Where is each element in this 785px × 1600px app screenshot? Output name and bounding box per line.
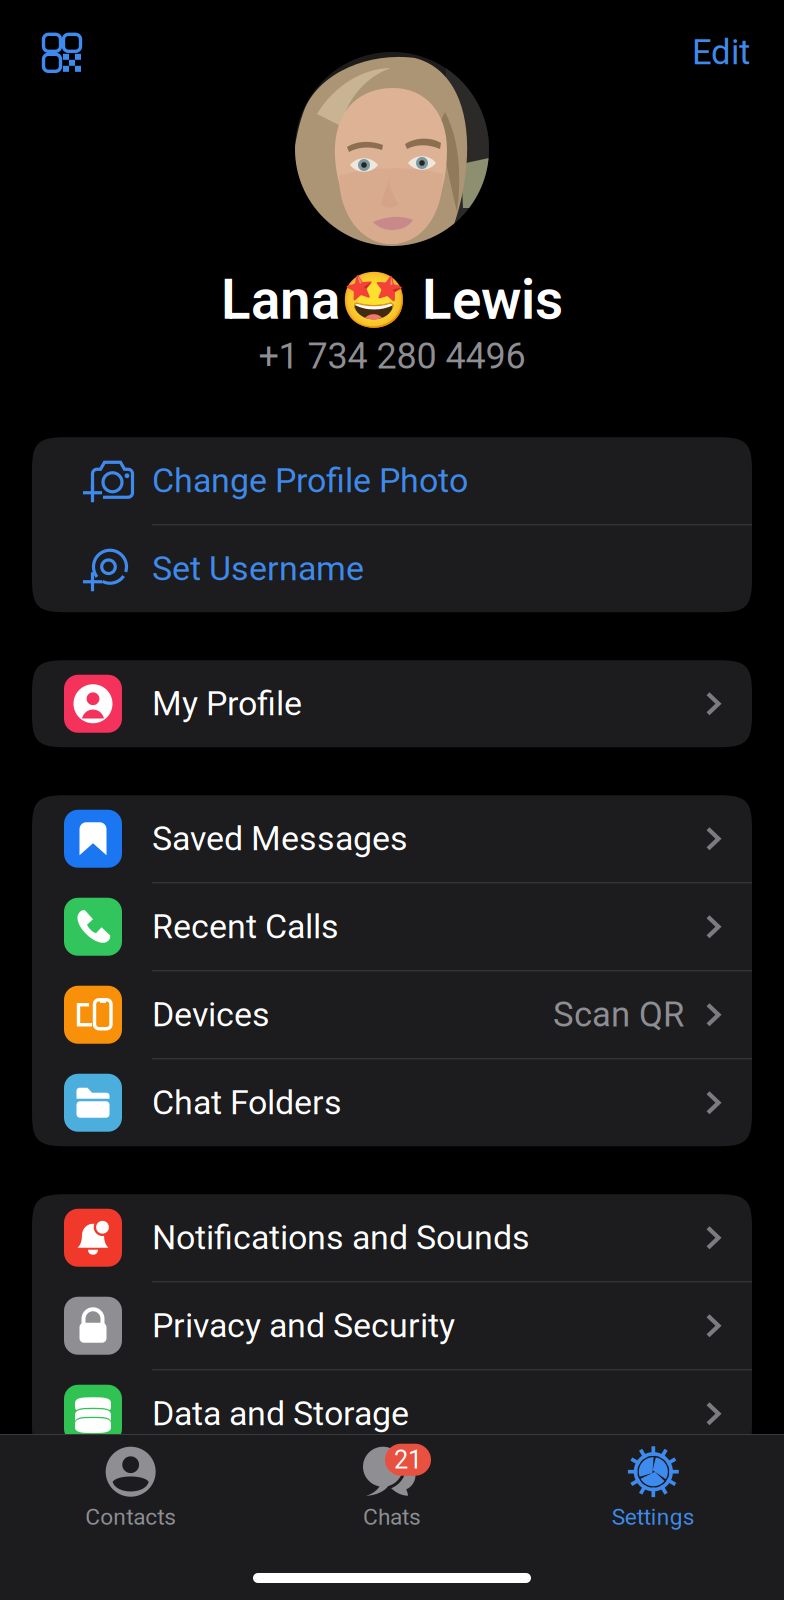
button[interactable]: Recent Calls <box>32 883 752 970</box>
staticText: Devices <box>152 995 270 1035</box>
staticText: Change Profile Photo <box>152 461 468 501</box>
staticText: Chat Folders <box>152 1083 342 1123</box>
staticText: 21 <box>394 1445 422 1475</box>
staticText: Recent Calls <box>152 907 339 947</box>
button[interactable]: 21 <box>261 1438 523 1530</box>
button[interactable]: Privacy and Security <box>32 1282 752 1369</box>
staticText: Settings <box>612 1504 695 1530</box>
staticText: Contacts <box>85 1504 176 1530</box>
staticText: My Profile <box>152 684 302 724</box>
staticText: Set Username <box>152 549 364 589</box>
button[interactable]: Devices <box>32 971 752 1058</box>
button[interactable]: Edit <box>658 0 784 93</box>
button[interactable]: My Profile <box>32 660 752 747</box>
button[interactable]: Change Profile Photo <box>32 437 752 524</box>
button[interactable]: Scan QR code <box>0 7 101 86</box>
staticText: +1 734 280 4496 <box>258 335 525 377</box>
button[interactable]: Chat Folders <box>32 1059 752 1146</box>
staticText: Lana🤩 Lewis <box>221 268 563 332</box>
staticText: Data and Storage <box>152 1394 409 1434</box>
button[interactable]: Notifications and Sounds <box>32 1194 752 1281</box>
button[interactable]: Set Username <box>32 525 752 612</box>
button[interactable]: Data and Storage <box>32 1370 752 1457</box>
staticText: Chats <box>363 1504 421 1530</box>
staticText: Scan QR <box>553 994 684 1035</box>
button[interactable]: Saved Messages <box>32 795 752 882</box>
button[interactable]: Settings <box>523 1438 784 1530</box>
button[interactable]: Contacts <box>0 1438 261 1530</box>
staticText: Privacy and Security <box>152 1306 455 1346</box>
staticText: Notifications and Sounds <box>152 1218 530 1258</box>
staticText: Saved Messages <box>152 819 408 859</box>
staticText: Edit <box>692 32 750 73</box>
